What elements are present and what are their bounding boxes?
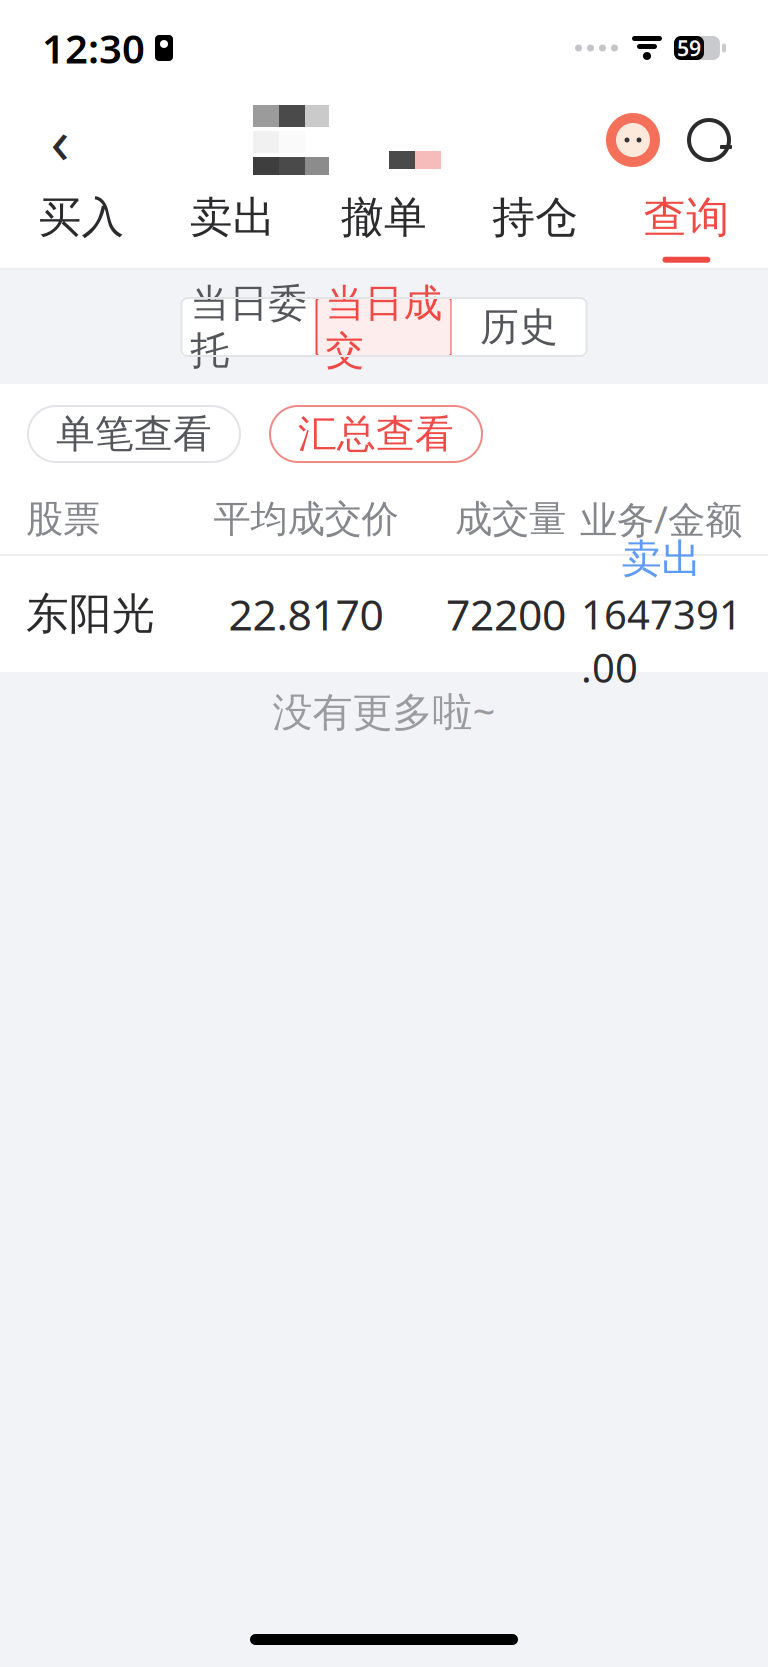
button[interactable]: 买入 [6,184,157,270]
staticText: 平均成交价 [213,496,398,542]
button[interactable]: Back [24,104,96,176]
button[interactable]: 持仓 [460,184,611,270]
button[interactable]: 历史 [451,298,586,356]
staticText: 卖出 [621,534,701,583]
button[interactable]: 当日委托 [181,298,316,356]
staticText: 业务/金额 [580,494,742,544]
staticText: 持仓 [492,191,578,244]
button[interactable]: Account [598,105,668,175]
staticText: ‹ [50,99,69,181]
button[interactable]: 东阳光 [0,556,768,672]
button[interactable]: 撤单 [308,184,460,270]
staticText: 12:30 [42,21,145,74]
staticText: 当日成交 [325,279,442,374]
staticText: 单笔查看 [56,410,212,458]
staticText: 1647391.00 [581,587,742,694]
staticText: 59 [677,34,701,62]
staticText: 22.8170 [228,586,383,642]
staticText: 撤单 [341,191,427,244]
button[interactable]: 汇总查看 [270,406,482,462]
staticText: 东阳光 [26,588,155,640]
staticText: 历史 [480,303,558,351]
staticText: 查询 [643,191,729,244]
staticText: 成交量 [455,496,566,542]
staticText: 没有更多啦~ [272,684,495,737]
staticText: 汇总查看 [298,410,454,458]
button[interactable]: Refresh [674,105,744,175]
button[interactable]: 查询 [611,184,762,270]
button[interactable]: 当日成交 [316,298,451,356]
button[interactable]: 卖出 [157,184,308,270]
staticText: 72200 [446,586,566,642]
staticText: 股票 [26,496,100,542]
button[interactable]: 单笔查看 [28,406,240,462]
staticText: 当日委托 [190,279,307,374]
staticText: 卖出 [190,191,276,244]
staticText: 买入 [39,191,125,244]
